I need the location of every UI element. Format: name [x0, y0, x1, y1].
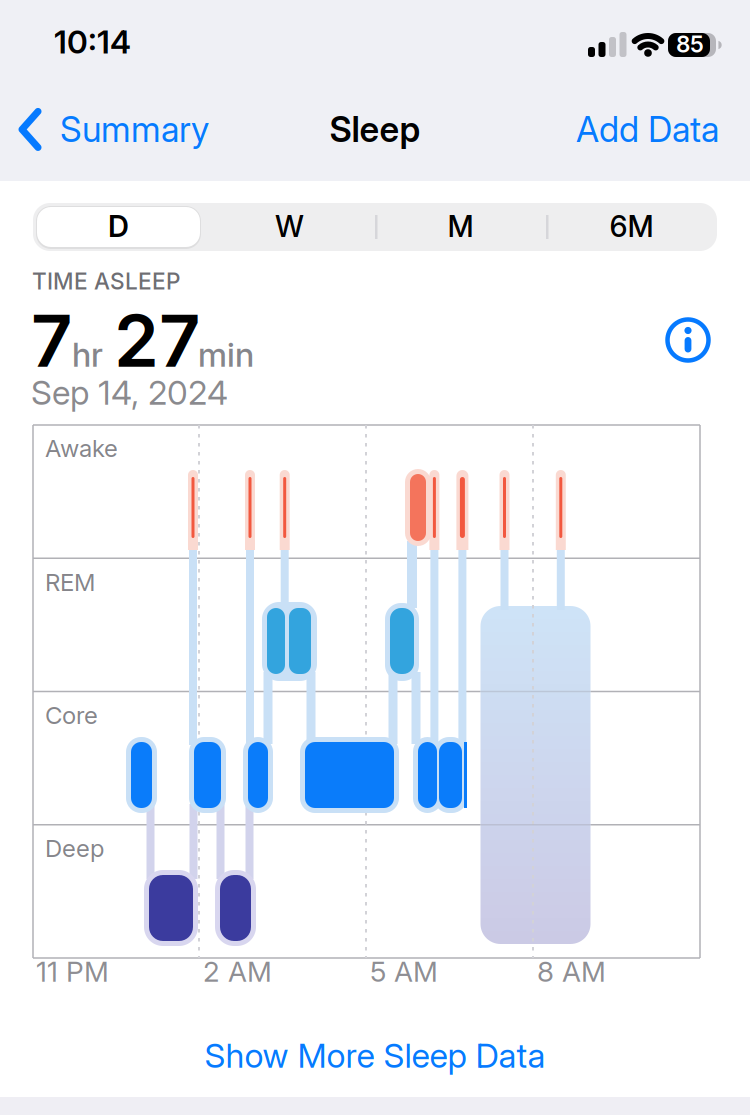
button[interactable]: 6M	[546, 209, 717, 244]
staticText: 85	[676, 31, 704, 58]
staticText: Add Data	[576, 109, 719, 150]
staticText: Sleep	[329, 109, 420, 150]
staticText: Summary	[60, 109, 209, 150]
staticText: TIME ASLEEP	[32, 268, 180, 295]
staticText: min	[198, 335, 254, 374]
staticText: Deep	[45, 834, 104, 862]
staticText: 7	[31, 298, 72, 383]
button[interactable]: Summary	[20, 109, 209, 150]
staticText: 8 AM	[537, 955, 606, 988]
staticText: Core	[45, 701, 98, 729]
staticText: 11 PM	[36, 955, 109, 988]
staticText: M	[447, 209, 473, 244]
staticText: 27	[114, 298, 200, 383]
button[interactable]: Add Data	[576, 109, 719, 150]
button[interactable]: Show More Sleep Data	[0, 1036, 750, 1075]
staticText: W	[275, 209, 304, 244]
button[interactable]: M	[375, 209, 546, 244]
button[interactable]: D	[33, 209, 204, 244]
staticText: hr	[72, 335, 103, 374]
staticText: Sep 14, 2024	[31, 373, 228, 412]
staticText: 5 AM	[370, 955, 438, 988]
staticText: Awake	[45, 434, 118, 462]
staticText: 10:14	[54, 23, 131, 61]
button[interactable]	[665, 317, 711, 363]
staticText: Show More Sleep Data	[204, 1036, 545, 1075]
staticText: D	[108, 209, 129, 244]
button[interactable]: W	[204, 209, 375, 244]
staticText: 2 AM	[203, 955, 272, 988]
staticText: REM	[45, 568, 95, 596]
staticText: 6M	[609, 209, 653, 244]
